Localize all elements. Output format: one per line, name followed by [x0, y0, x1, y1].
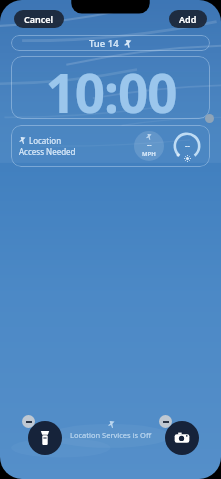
staticText: Cancel — [24, 13, 54, 25]
staticText: -- — [147, 140, 152, 150]
button[interactable]: Flashlight — [28, 421, 62, 455]
button[interactable]: Resize clock — [205, 114, 214, 123]
button[interactable]: -- — [134, 131, 164, 161]
button[interactable]: Remove Camera — [159, 415, 172, 428]
button[interactable]: Remove Flashlight — [22, 415, 35, 428]
button[interactable]: Location — [19, 135, 134, 157]
staticText: Location — [29, 135, 62, 146]
staticText: Access Needed — [19, 146, 76, 157]
staticText: 10:00 — [45, 56, 177, 119]
button[interactable]: Tue 14 — [11, 35, 210, 51]
staticText: Tue 14 — [89, 37, 119, 50]
staticText: Add — [179, 13, 197, 25]
staticText: MPH — [142, 150, 156, 158]
button[interactable]: Camera — [165, 421, 199, 455]
button[interactable]: Add — [169, 10, 207, 28]
button[interactable]: UV index — [172, 131, 202, 161]
staticText: Location Services is Off — [70, 430, 152, 440]
button[interactable]: Cancel — [14, 10, 64, 28]
button[interactable]: 10:00 — [11, 56, 210, 119]
staticText: -- — [185, 140, 190, 150]
